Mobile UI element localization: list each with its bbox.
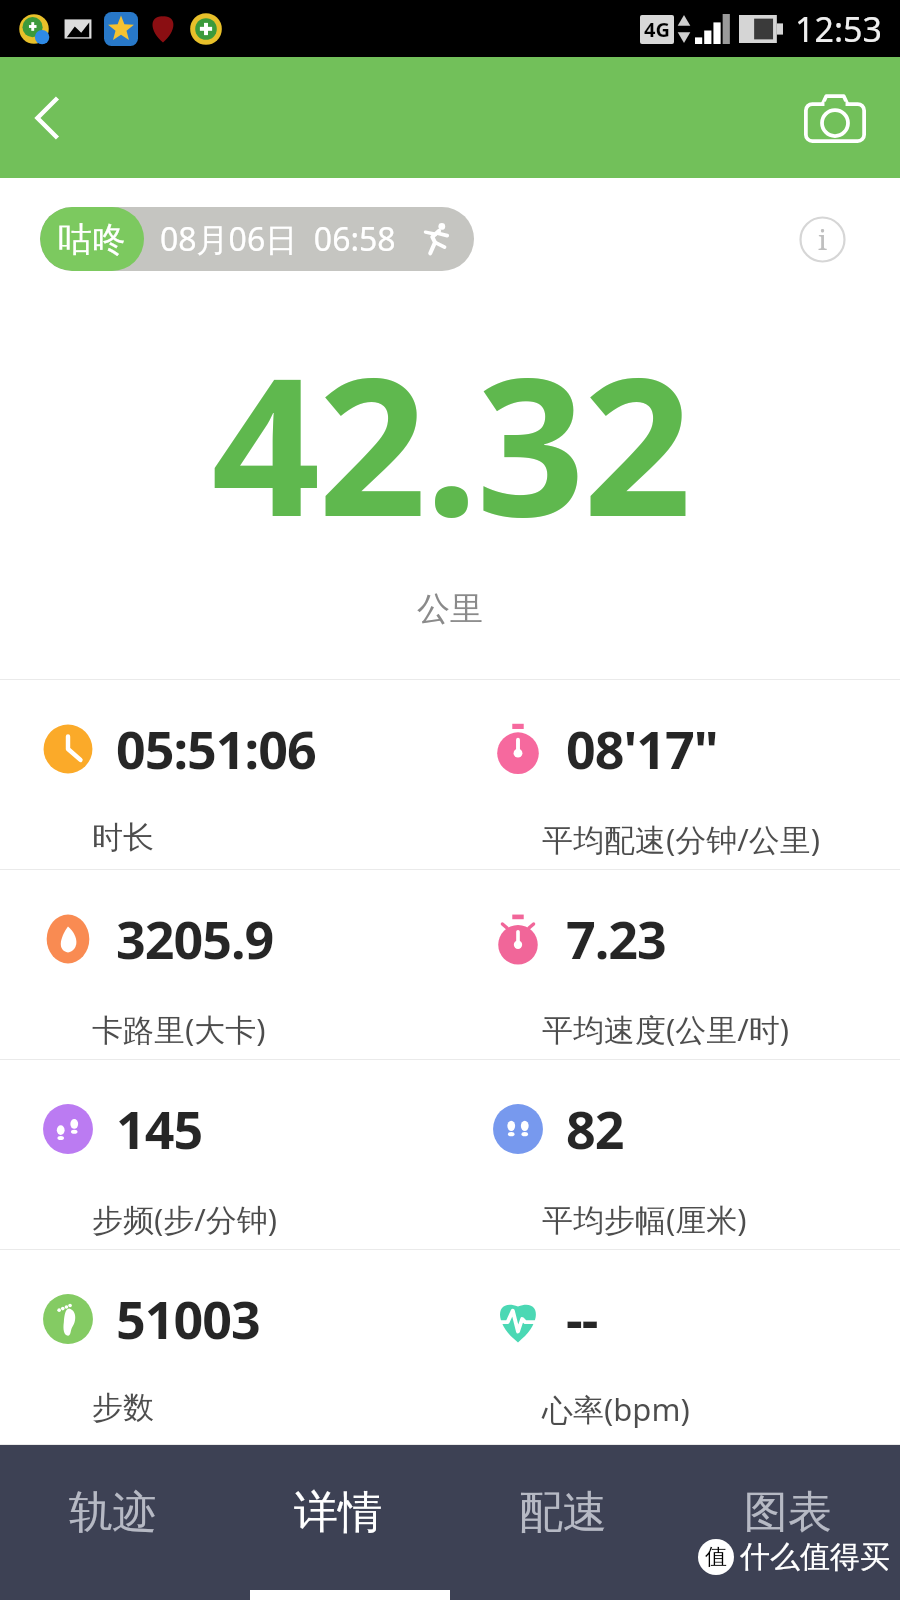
staticText: 步频(步/分钟)	[92, 1198, 278, 1240]
button[interactable]: 145	[0, 1060, 450, 1249]
staticText: 轨迹	[69, 1485, 157, 1540]
button[interactable]: 轨迹	[0, 1445, 225, 1600]
button[interactable]: Back	[8, 78, 88, 158]
staticText: 82	[566, 1093, 624, 1164]
staticText: 3205.9	[116, 903, 274, 974]
button[interactable]: Camera	[796, 79, 874, 157]
button[interactable]: 08'17"	[450, 680, 900, 869]
staticText: 卡路里(大卡)	[92, 1008, 266, 1050]
staticText: 时长	[92, 818, 154, 857]
staticText: 平均步幅(厘米)	[542, 1198, 747, 1240]
staticText: 平均配速(分钟/公里)	[542, 818, 821, 860]
button[interactable]: Info	[794, 211, 850, 267]
staticText: 配速	[519, 1485, 607, 1540]
staticText: 步数	[92, 1388, 154, 1427]
button[interactable]: 咕咚	[40, 207, 474, 271]
staticText: 4G	[644, 16, 670, 43]
staticText: 145	[116, 1093, 203, 1164]
staticText: 08'17"	[566, 713, 718, 784]
staticText: 7.23	[566, 903, 666, 974]
button[interactable]: 82	[450, 1060, 900, 1249]
staticText: 42.32	[211, 313, 690, 572]
button[interactable]: 05:51:06	[0, 680, 450, 869]
staticText: i	[818, 220, 827, 258]
staticText: 心率(bpm)	[542, 1388, 690, 1430]
button[interactable]: 图表	[675, 1445, 900, 1600]
button[interactable]: --	[450, 1250, 900, 1439]
staticText: 05:51:06	[116, 713, 316, 784]
staticText: 什么值得买	[740, 1538, 890, 1576]
staticText: 图表	[744, 1485, 832, 1540]
staticText: 12:53	[795, 6, 882, 52]
button[interactable]: 7.23	[450, 870, 900, 1059]
staticText: 值	[705, 1543, 727, 1571]
button[interactable]: 3205.9	[0, 870, 450, 1059]
staticText: 51003	[116, 1283, 260, 1354]
button[interactable]: 51003	[0, 1250, 450, 1439]
staticText: 公里	[417, 588, 483, 630]
staticText: 平均速度(公里/时)	[542, 1008, 790, 1050]
button[interactable]: 详情	[225, 1445, 450, 1600]
staticText: 08月06日 06:58	[160, 217, 396, 261]
button[interactable]: 配速	[450, 1445, 675, 1600]
staticText: --	[566, 1283, 598, 1354]
staticText: 详情	[294, 1485, 382, 1540]
staticText: 咕咚	[58, 218, 126, 261]
